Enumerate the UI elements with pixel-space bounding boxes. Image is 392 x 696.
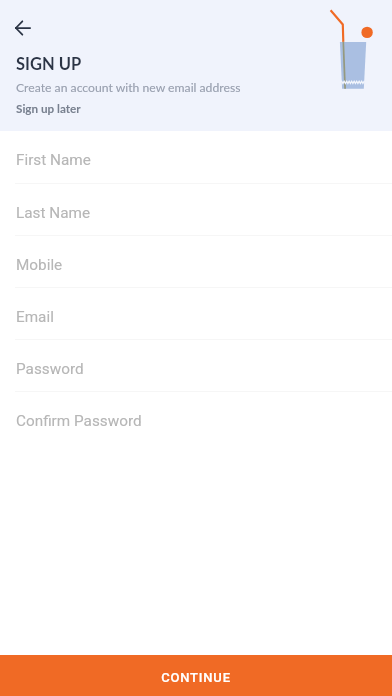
button[interactable]: Sign up later — [16, 101, 81, 115]
button[interactable]: Password — [0, 340, 392, 391]
staticText: First Name — [16, 151, 91, 169]
staticText: Mobile — [16, 256, 63, 274]
staticText: CONTINUE — [161, 670, 231, 685]
staticText: Confirm Password — [16, 412, 142, 430]
button[interactable]: Back — [8, 13, 38, 43]
staticText: SIGN UP — [16, 54, 82, 74]
staticText: Email — [16, 308, 54, 326]
staticText: Password — [16, 360, 84, 378]
staticText: Last Name — [16, 204, 91, 222]
other: Drink illustration — [326, 0, 392, 96]
button[interactable]: Mobile — [0, 236, 392, 287]
button[interactable]: CONTINUE — [0, 655, 392, 696]
button[interactable]: First Name — [0, 131, 392, 183]
staticText: Create an account with new email address — [16, 80, 241, 95]
button[interactable]: Last Name — [0, 184, 392, 235]
button[interactable]: Confirm Password — [0, 392, 392, 443]
button[interactable]: Email — [0, 288, 392, 339]
